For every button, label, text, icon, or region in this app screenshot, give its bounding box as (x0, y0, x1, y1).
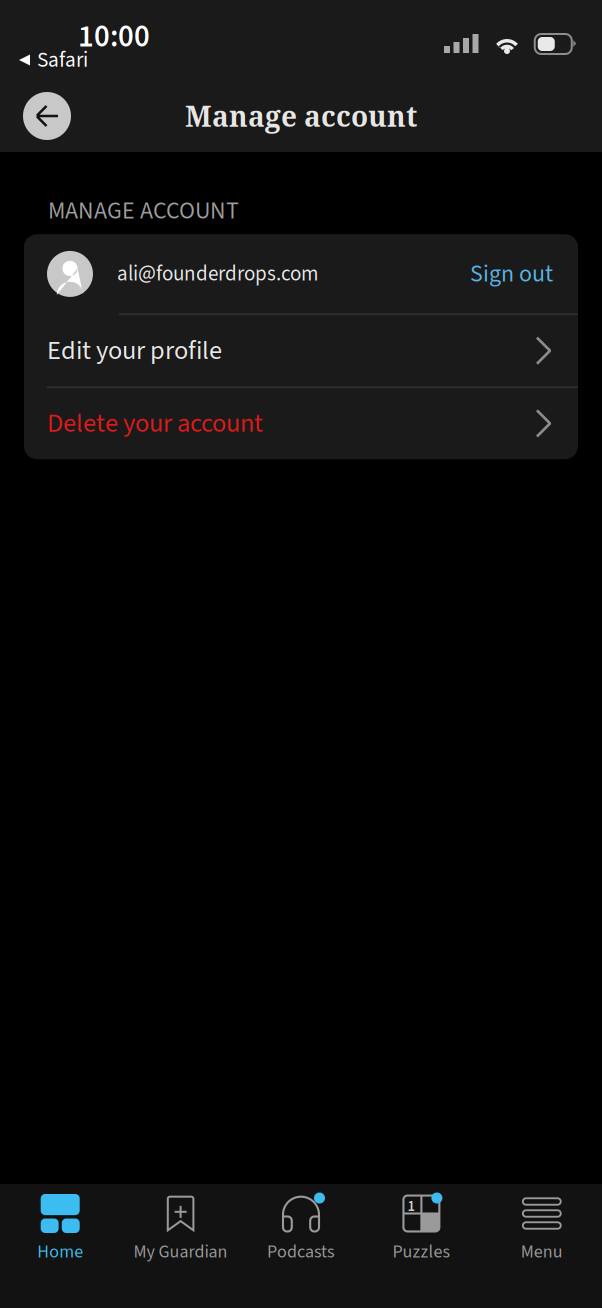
button[interactable]: Home (0, 1184, 120, 1308)
staticText: ali@founderdrops.com (117, 259, 318, 289)
staticText: 10:00 (78, 15, 150, 59)
button[interactable]: Edit your profile (24, 315, 578, 387)
staticText: Manage account (185, 97, 417, 135)
staticText: My Guardian (134, 1239, 228, 1265)
staticText: 1 (407, 1196, 415, 1217)
button[interactable]: Sign out (456, 247, 553, 301)
button[interactable]: My Guardian (120, 1184, 241, 1308)
button[interactable]: Podcasts (241, 1184, 361, 1308)
button[interactable]: Back (23, 92, 71, 140)
staticText: MANAGE ACCOUNT (48, 194, 239, 228)
staticText: Edit your profile (47, 332, 222, 369)
staticText: Safari (37, 45, 88, 75)
staticText: Sign out (470, 257, 553, 291)
button[interactable]: 1 (361, 1184, 482, 1308)
staticText: Menu (521, 1239, 563, 1265)
button[interactable]: Delete your account (24, 388, 578, 459)
staticText: Delete your account (47, 405, 263, 442)
staticText: Home (37, 1239, 83, 1265)
button[interactable]: Menu (482, 1184, 602, 1308)
staticText: Puzzles (392, 1239, 450, 1265)
staticText: Podcasts (267, 1239, 335, 1265)
